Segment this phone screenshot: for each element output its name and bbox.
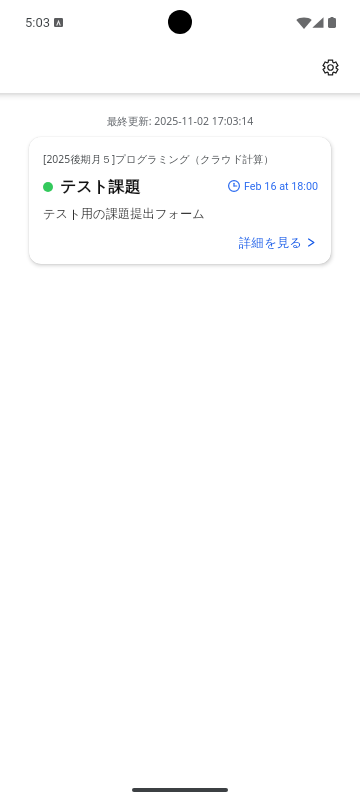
staticText: Feb 16 at 18:00 xyxy=(244,180,319,193)
button[interactable]: Settings xyxy=(310,47,350,87)
button[interactable]: 詳細を見る xyxy=(239,235,316,251)
staticText: 詳細を見る xyxy=(239,235,303,251)
staticText: 最終更新: 2025-11-02 17:03:14 xyxy=(0,114,360,128)
button[interactable]: [2025後期月５]プログラミング（クラウド計算） xyxy=(29,137,331,264)
staticText: [2025後期月５]プログラミング（クラウド計算） xyxy=(43,152,274,166)
staticText: テスト課題 xyxy=(60,177,141,197)
staticText: 5:03 xyxy=(25,15,51,30)
staticText: テスト用の課題提出フォーム xyxy=(43,206,205,221)
